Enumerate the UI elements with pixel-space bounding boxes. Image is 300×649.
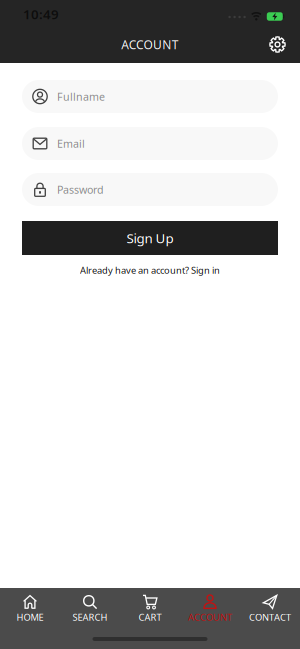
button[interactable]: Password bbox=[22, 173, 278, 206]
button[interactable]: CART bbox=[120, 594, 180, 623]
button[interactable]: HOME bbox=[0, 594, 60, 623]
button[interactable]: ACCOUNT bbox=[180, 594, 240, 623]
staticText: 10:49 bbox=[23, 5, 59, 23]
button[interactable]: Sign Up bbox=[22, 221, 278, 255]
button[interactable]: CONTACT bbox=[240, 594, 300, 623]
staticText: CONTACT bbox=[249, 611, 291, 623]
button[interactable]: Email bbox=[22, 127, 278, 160]
button[interactable]: SEARCH bbox=[60, 594, 120, 623]
staticText: HOME bbox=[16, 611, 43, 623]
staticText: Email bbox=[57, 136, 85, 151]
staticText: Sign Up bbox=[126, 229, 173, 247]
staticText: ACCOUNT bbox=[188, 611, 232, 623]
staticText: Already have an account? Sign in bbox=[80, 264, 220, 276]
button[interactable] bbox=[268, 35, 300, 56]
staticText: SEARCH bbox=[72, 611, 107, 623]
staticText: CART bbox=[138, 611, 161, 623]
staticText: Fullname bbox=[57, 89, 105, 104]
button[interactable]: Already have an account? Sign in bbox=[80, 264, 220, 276]
button[interactable]: Fullname bbox=[22, 80, 278, 113]
staticText: ACCOUNT bbox=[121, 36, 179, 52]
staticText: Password bbox=[57, 182, 104, 197]
